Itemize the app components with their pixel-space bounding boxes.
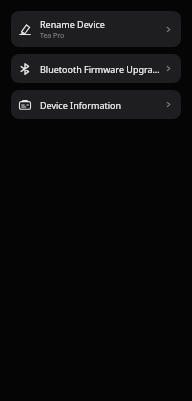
staticText: Tea Pro: [40, 31, 65, 41]
staticText: Rename Device: [40, 18, 105, 30]
staticText: Bluetooth Firmware Upgrade: [40, 63, 160, 75]
other: Edit: [19, 23, 31, 35]
button[interactable]: Bluetooth: [11, 54, 181, 83]
button[interactable]: Device Information: [11, 90, 181, 119]
other: Device Information: [19, 99, 31, 111]
button[interactable]: Edit: [11, 11, 181, 47]
other: Bluetooth: [19, 63, 31, 75]
staticText: Device Information: [40, 99, 122, 111]
